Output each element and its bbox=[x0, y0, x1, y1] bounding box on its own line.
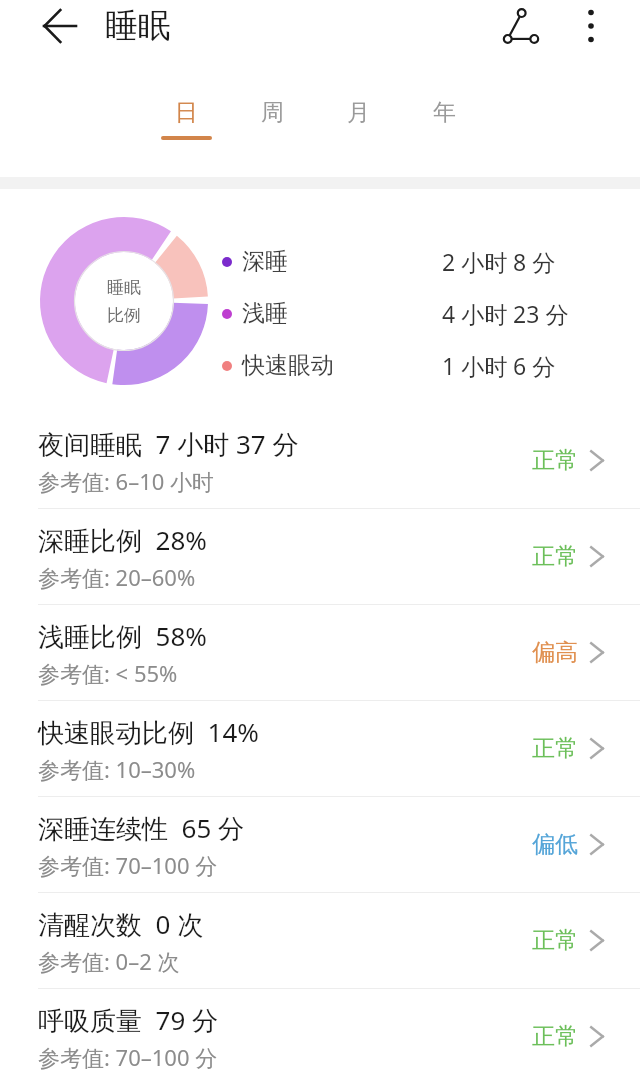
staticText: 日 bbox=[175, 98, 198, 127]
staticText: 参考值: 0–2 次 bbox=[38, 946, 180, 976]
staticText: 浅睡比例 58% bbox=[38, 618, 207, 654]
staticText: 月 bbox=[347, 98, 370, 127]
button[interactable]: 深睡比例 28% bbox=[0, 509, 640, 604]
staticText: 正常 bbox=[532, 734, 578, 763]
button[interactable]: 周 bbox=[229, 51, 315, 177]
button[interactable]: 深睡连续性 65 分 bbox=[0, 797, 640, 892]
staticText: 睡眠 bbox=[105, 5, 171, 47]
staticText: 参考值: 10–30% bbox=[38, 754, 196, 784]
staticText: 参考值: 70–100 分 bbox=[38, 850, 218, 880]
staticText: 偏高 bbox=[532, 638, 578, 667]
staticText: 参考值: 20–60% bbox=[38, 562, 196, 592]
staticText: 年 bbox=[433, 98, 456, 127]
button[interactable]: 快速眼动比例 14% bbox=[0, 701, 640, 796]
staticText: 快速眼动 bbox=[242, 351, 334, 380]
button[interactable]: Back bbox=[37, 3, 83, 49]
staticText: 参考值: 70–100 分 bbox=[38, 1042, 218, 1072]
staticText: 快速眼动比例 14% bbox=[38, 714, 259, 750]
staticText: 正常 bbox=[532, 446, 578, 475]
staticText: 1 小时 6 分 bbox=[442, 350, 556, 381]
staticText: 呼吸质量 79 分 bbox=[38, 1002, 219, 1038]
staticText: 深睡连续性 65 分 bbox=[38, 810, 245, 846]
staticText: 浅睡 bbox=[242, 299, 288, 328]
button[interactable]: More options bbox=[568, 3, 614, 49]
staticText: 正常 bbox=[532, 926, 578, 955]
staticText: 偏低 bbox=[532, 830, 578, 859]
button[interactable]: Share bbox=[498, 3, 544, 49]
staticText: 正常 bbox=[532, 1022, 578, 1051]
staticText: 正常 bbox=[532, 542, 578, 571]
button[interactable]: 夜间睡眠 7 小时 37 分 bbox=[0, 413, 640, 508]
staticText: 4 小时 23 分 bbox=[442, 298, 569, 329]
button[interactable]: 年 bbox=[401, 51, 487, 177]
staticText: 深睡 bbox=[242, 247, 288, 276]
button[interactable]: 日 bbox=[143, 51, 229, 177]
button[interactable]: 呼吸质量 79 分 bbox=[0, 989, 640, 1084]
staticText: 周 bbox=[261, 98, 284, 127]
staticText: 比例 bbox=[107, 305, 141, 326]
staticText: 2 小时 8 分 bbox=[442, 246, 556, 277]
staticText: 清醒次数 0 次 bbox=[38, 906, 204, 942]
button[interactable]: 清醒次数 0 次 bbox=[0, 893, 640, 988]
button[interactable]: 浅睡比例 58% bbox=[0, 605, 640, 700]
button[interactable]: 月 bbox=[315, 51, 401, 177]
staticText: 参考值: < 55% bbox=[38, 658, 178, 688]
staticText: 睡眠 bbox=[107, 277, 141, 298]
staticText: 参考值: 6–10 小时 bbox=[38, 466, 215, 496]
staticText: 夜间睡眠 7 小时 37 分 bbox=[38, 426, 299, 462]
staticText: 深睡比例 28% bbox=[38, 522, 207, 558]
